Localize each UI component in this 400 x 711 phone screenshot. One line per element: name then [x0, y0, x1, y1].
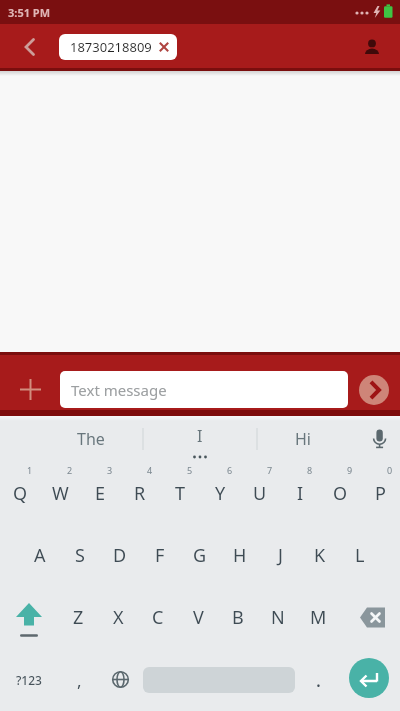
button[interactable]: Text message [60, 371, 348, 408]
button[interactable]: S [60, 524, 100, 586]
button[interactable]: Hi [257, 416, 348, 462]
button[interactable]: J [260, 524, 300, 586]
staticText: L [355, 543, 365, 568]
button[interactable]: R [120, 462, 160, 524]
button[interactable]: E [80, 462, 120, 524]
button[interactable] [140, 648, 298, 711]
button[interactable] [0, 586, 58, 648]
button[interactable]: I [280, 462, 320, 524]
staticText: T [175, 481, 186, 506]
staticText: 8 [307, 464, 313, 476]
button[interactable]: M [298, 586, 338, 648]
staticText: W [52, 481, 69, 506]
staticText: , [77, 669, 82, 692]
button[interactable]: G [180, 524, 220, 586]
button[interactable] [338, 586, 400, 648]
staticText: . [316, 668, 321, 693]
button[interactable]: V [178, 586, 218, 648]
staticText: Hi [295, 428, 311, 450]
staticText: 4 [147, 464, 153, 476]
button[interactable] [12, 29, 48, 65]
staticText: S [75, 543, 85, 568]
staticText: C [152, 605, 164, 630]
staticText: F [155, 543, 165, 568]
staticText: 5 [187, 464, 193, 476]
button[interactable]: T [160, 462, 200, 524]
staticText: 7 [267, 464, 273, 476]
staticText: Y [215, 481, 226, 506]
button[interactable] [358, 33, 386, 61]
staticText: B [232, 605, 244, 630]
button[interactable]: N [258, 586, 298, 648]
button[interactable]: O [320, 462, 360, 524]
button[interactable]: F [140, 524, 180, 586]
staticText: X [113, 605, 124, 630]
button[interactable] [100, 648, 140, 711]
staticText: I [197, 425, 203, 447]
staticText: The [77, 428, 105, 450]
button[interactable] [348, 416, 400, 462]
staticText: 2 [67, 464, 73, 476]
button[interactable]: A [20, 524, 60, 586]
staticText: O [333, 481, 348, 506]
staticText: G [193, 543, 207, 568]
button[interactable]: U [240, 462, 280, 524]
staticText: E [95, 481, 106, 506]
staticText: Q [13, 481, 28, 506]
staticText: P [375, 481, 386, 506]
staticText: I [297, 481, 304, 506]
staticText: R [134, 481, 146, 506]
staticText: A [34, 543, 46, 568]
button[interactable]: 18730218809 [59, 34, 177, 60]
staticText: 0 [387, 464, 393, 476]
button[interactable]: , [58, 648, 100, 711]
staticText: 18730218809 [70, 38, 152, 56]
button[interactable]: I [143, 416, 257, 462]
button[interactable]: The [0, 416, 143, 462]
button[interactable]: W [40, 462, 80, 524]
button[interactable]: Z [58, 586, 98, 648]
staticText: D [113, 543, 127, 568]
button[interactable]: D [100, 524, 140, 586]
button[interactable]: B [218, 586, 258, 648]
button[interactable]: H [220, 524, 260, 586]
button[interactable]: K [300, 524, 340, 586]
staticText: 3:51 PM [8, 5, 51, 20]
staticText: U [253, 481, 267, 506]
button[interactable]: ?123 [0, 648, 58, 711]
staticText: 9 [347, 464, 353, 476]
staticText: Z [73, 605, 84, 630]
button[interactable] [0, 371, 60, 408]
staticText: N [271, 605, 285, 630]
staticText: Text message [71, 380, 167, 400]
button[interactable]: C [138, 586, 178, 648]
staticText: M [310, 605, 327, 630]
button[interactable]: . [298, 648, 338, 711]
staticText: 1 [27, 464, 33, 476]
staticText: V [193, 605, 204, 630]
button[interactable] [359, 375, 389, 405]
button[interactable]: P [360, 462, 400, 524]
staticText: 3 [107, 464, 113, 476]
button[interactable]: X [98, 586, 138, 648]
staticText: 6 [227, 464, 233, 476]
button[interactable]: Y [200, 462, 240, 524]
button[interactable]: Q [0, 462, 40, 524]
staticText: J [278, 543, 283, 568]
button[interactable] [349, 658, 389, 698]
staticText: K [314, 543, 326, 568]
staticText: ?123 [16, 672, 42, 688]
button[interactable]: L [340, 524, 380, 586]
staticText: H [233, 543, 247, 568]
